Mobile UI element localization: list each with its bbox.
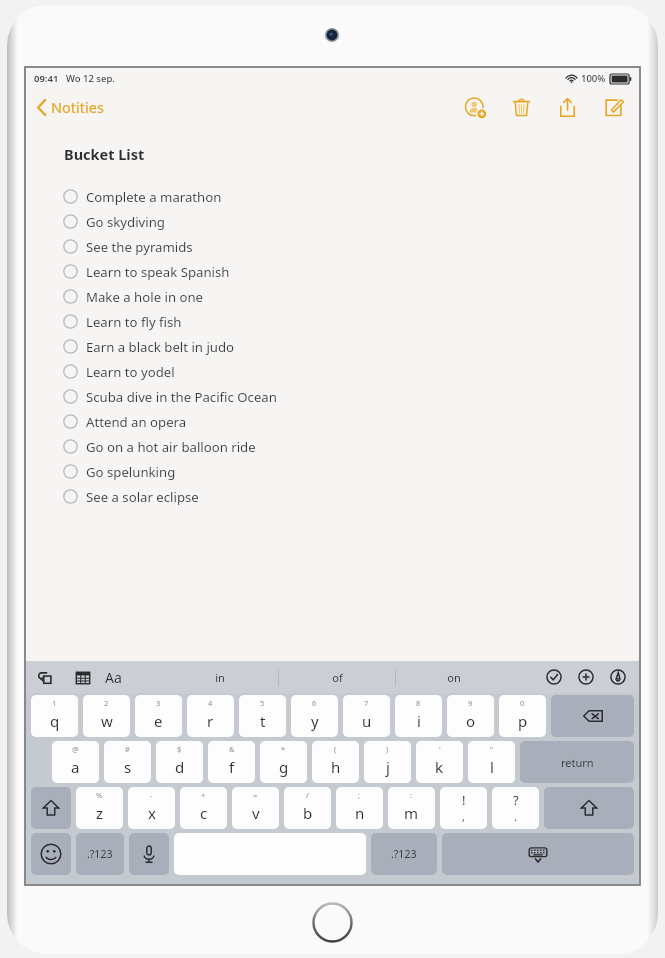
button[interactable]: return xyxy=(520,741,634,783)
button[interactable]: + xyxy=(180,787,227,829)
button[interactable]: # xyxy=(104,741,151,783)
staticText: 2 xyxy=(104,698,109,708)
button[interactable]: Dictation xyxy=(129,833,169,875)
button[interactable]: Complete a marathon xyxy=(26,184,639,209)
button[interactable]: Scuba dive in the Pacific Ocean xyxy=(26,384,639,409)
button[interactable]: Learn to yodel xyxy=(26,359,639,384)
button[interactable]: Go on a hot air balloon ride xyxy=(26,434,639,459)
staticText: Scuba dive in the Pacific Ocean xyxy=(86,388,277,406)
staticText: of xyxy=(332,670,343,685)
staticText: Learn to yodel xyxy=(86,363,175,381)
button[interactable]: Compose xyxy=(601,95,625,119)
staticText: @ xyxy=(72,744,79,754)
button[interactable]: ? xyxy=(492,787,539,829)
staticText: 0 xyxy=(520,698,525,708)
staticText: s xyxy=(124,757,132,777)
button[interactable]: 0 xyxy=(499,695,546,737)
button[interactable]: ' xyxy=(416,741,463,783)
button[interactable]: 3 xyxy=(135,695,182,737)
staticText: ? xyxy=(513,791,519,809)
staticText: ' xyxy=(439,744,441,754)
staticText: l xyxy=(490,757,494,777)
staticText: 3 xyxy=(156,698,161,708)
staticText: 6 xyxy=(312,698,317,708)
staticText: + xyxy=(201,790,206,800)
button[interactable]: 1 xyxy=(31,695,78,737)
button[interactable]: 4 xyxy=(187,695,234,737)
staticText: g xyxy=(279,757,289,777)
staticText: Notities xyxy=(51,97,104,117)
button[interactable]: ( xyxy=(312,741,359,783)
button[interactable]: Hide keyboard xyxy=(442,833,634,875)
button[interactable]: : xyxy=(388,787,435,829)
button[interactable]: See a solar eclipse xyxy=(26,484,639,509)
staticText: o xyxy=(466,711,476,731)
button[interactable]: Shift xyxy=(544,787,634,829)
button[interactable]: Share xyxy=(555,95,579,119)
button[interactable]: - xyxy=(128,787,175,829)
button[interactable]: 6 xyxy=(291,695,338,737)
button[interactable]: $ xyxy=(156,741,203,783)
button[interactable]: Add people xyxy=(463,95,487,119)
button[interactable]: Make a hole in one xyxy=(26,284,639,309)
button[interactable]: ! xyxy=(440,787,487,829)
button[interactable]: Learn to fly fish xyxy=(26,309,639,334)
button[interactable]: Aa xyxy=(102,665,125,690)
button[interactable]: Attend an opera xyxy=(26,409,639,434)
staticText: m xyxy=(404,803,419,823)
staticText: 7 xyxy=(364,698,369,708)
button[interactable]: % xyxy=(76,787,123,829)
staticText: f xyxy=(229,757,235,777)
button[interactable]: 5 xyxy=(239,695,286,737)
button[interactable]: Check xyxy=(543,666,565,688)
button[interactable]: Go spelunking xyxy=(26,459,639,484)
button[interactable]: 8 xyxy=(395,695,442,737)
button[interactable]: " xyxy=(468,741,515,783)
button[interactable]: on xyxy=(396,661,512,693)
button[interactable]: Add attachment xyxy=(575,666,597,688)
staticText: z xyxy=(96,803,104,823)
button[interactable]: Emoji xyxy=(31,833,71,875)
staticText: , xyxy=(462,809,465,824)
button[interactable]: Go skydiving xyxy=(26,209,639,234)
staticText: ! xyxy=(462,791,466,809)
staticText: w xyxy=(101,711,113,731)
button[interactable]: Undo xyxy=(34,667,56,689)
button[interactable]: & xyxy=(208,741,255,783)
staticText: c xyxy=(200,803,208,823)
button[interactable]: Notities xyxy=(34,94,107,120)
staticText: Attend an opera xyxy=(86,413,187,431)
button[interactable]: / xyxy=(284,787,331,829)
button[interactable]: Markup xyxy=(607,666,629,688)
staticText: ) xyxy=(386,744,389,754)
staticText: / xyxy=(306,790,309,800)
button[interactable]: See the pyramids xyxy=(26,234,639,259)
button[interactable]: Delete xyxy=(509,95,533,119)
button[interactable]: Learn to speak Spanish xyxy=(26,259,639,284)
staticText: t xyxy=(260,711,266,731)
staticText: b xyxy=(303,803,313,823)
button[interactable]: = xyxy=(232,787,279,829)
button[interactable]: ; xyxy=(336,787,383,829)
button[interactable]: Shift xyxy=(31,787,71,829)
button[interactable]: 9 xyxy=(447,695,494,737)
staticText: # xyxy=(125,744,130,754)
button[interactable]: .?123 xyxy=(371,833,437,875)
staticText: 5 xyxy=(260,698,265,708)
button[interactable]: 2 xyxy=(83,695,130,737)
button[interactable]: 7 xyxy=(343,695,390,737)
button[interactable]: of xyxy=(279,661,395,693)
button[interactable]: in xyxy=(162,661,278,693)
staticText: p xyxy=(518,711,528,731)
button[interactable]: Earn a black belt in judo xyxy=(26,334,639,359)
staticText: return xyxy=(561,755,594,770)
button[interactable]: @ xyxy=(52,741,99,783)
staticText: % xyxy=(96,790,103,800)
button[interactable]: * xyxy=(260,741,307,783)
button[interactable]: ) xyxy=(364,741,411,783)
button[interactable]: .?123 xyxy=(76,833,124,875)
button[interactable]: Backspace xyxy=(551,695,634,737)
staticText: j xyxy=(386,757,390,777)
button[interactable]: Table xyxy=(72,667,94,689)
